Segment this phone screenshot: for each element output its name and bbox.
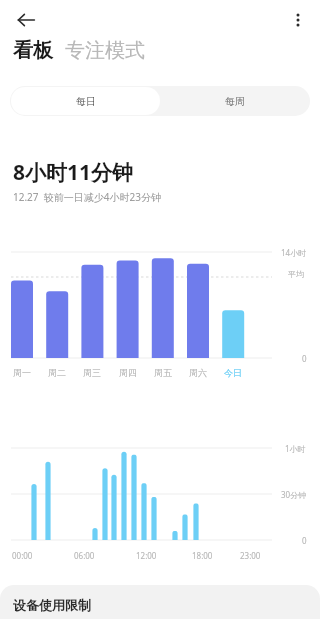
staticText: 1小时 (285, 443, 306, 454)
staticText: 周四 (116, 367, 140, 378)
staticText: 专注模式 (65, 38, 145, 63)
staticText: 周五 (151, 367, 175, 378)
staticText: 18:00 (192, 550, 213, 561)
staticText: 今日 (221, 367, 245, 378)
staticText: 每日 (76, 95, 96, 108)
staticText: 周一 (10, 367, 34, 378)
staticText: 平均 (288, 269, 304, 279)
staticText: 每周 (225, 95, 245, 108)
staticText: 12:00 (136, 550, 157, 561)
button[interactable]: 每日 (11, 87, 160, 115)
staticText: 00:00 (12, 550, 33, 561)
staticText: 周六 (186, 367, 210, 378)
staticText: 0 (302, 353, 307, 364)
staticText: 看板 (13, 38, 53, 63)
staticText: 14小时 (281, 247, 307, 258)
button[interactable]: Back (8, 2, 44, 38)
staticText: 周二 (45, 367, 69, 378)
staticText: 0 (302, 535, 307, 546)
staticText: 30分钟 (281, 489, 307, 500)
button[interactable]: More options (280, 2, 316, 38)
staticText: 23:00 (240, 550, 261, 561)
button[interactable]: 设备使用限制 (0, 585, 320, 619)
staticText: 06:00 (74, 550, 95, 561)
staticText: 周三 (80, 367, 104, 378)
button[interactable]: 专注模式 (65, 38, 145, 63)
staticText: 12.27 较前一日减少4小时23分钟 (13, 190, 161, 204)
button[interactable]: 每周 (160, 87, 309, 115)
staticText: 设备使用限制 (13, 597, 91, 613)
staticText: 8小时11分钟 (13, 158, 134, 187)
